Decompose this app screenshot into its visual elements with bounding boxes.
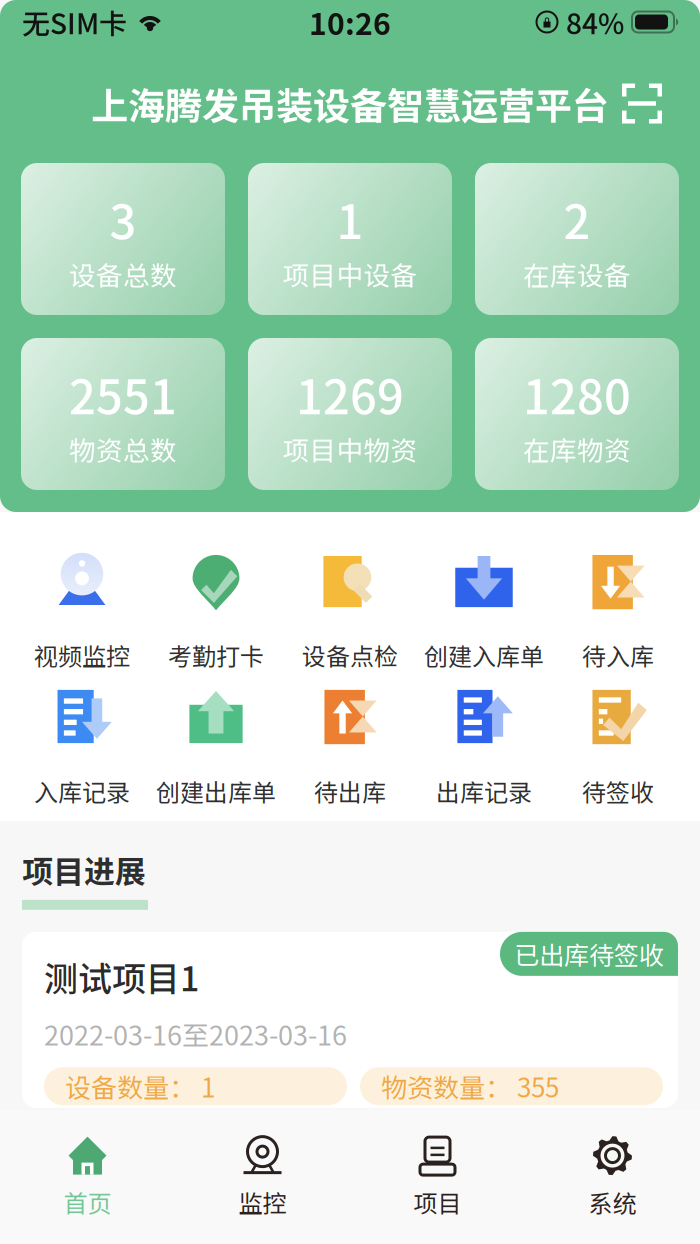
button[interactable]: 系统 [525, 1110, 700, 1244]
staticText: 项目中设备 [282, 255, 417, 293]
staticText: 待出库 [314, 774, 386, 808]
button[interactable]: 1280 [475, 338, 679, 490]
staticText: 1280 [523, 360, 631, 428]
staticText: 测试项目1 [44, 952, 199, 1001]
button[interactable]: 测试项目1 [22, 932, 678, 1108]
staticText: 1 [336, 185, 363, 253]
button[interactable]: 视频监控 [15, 543, 149, 679]
button[interactable]: 1269 [248, 338, 452, 490]
staticText: 创建入库单 [424, 638, 544, 672]
staticText: 监控 [238, 1185, 286, 1219]
staticText: 已出库待签收 [514, 936, 664, 972]
staticText: 84% [566, 2, 624, 42]
staticText: 2551 [69, 360, 177, 428]
button[interactable]: 扫一扫 [612, 73, 672, 133]
button[interactable]: 入库记录 [15, 679, 149, 815]
button[interactable]: 首页 [0, 1110, 175, 1244]
staticText: 设备总数 [69, 255, 177, 293]
staticText: 2022-03-16至2023-03-16 [44, 1014, 347, 1053]
staticText: 上海腾发吊装设备智慧运营平台 [91, 77, 609, 130]
button[interactable]: 2 [475, 163, 679, 315]
button[interactable]: 待签收 [551, 679, 685, 815]
staticText: 设备点检 [302, 638, 398, 672]
staticText: 系统 [588, 1185, 636, 1219]
button[interactable]: 项目 [350, 1110, 525, 1244]
button[interactable]: 创建出库单 [149, 679, 283, 815]
staticText: 创建出库单 [156, 774, 276, 808]
staticText: 待签收 [582, 774, 654, 808]
button[interactable]: 2551 [21, 338, 225, 490]
staticText: 项目中物资 [282, 430, 417, 468]
staticText: 10:26 [309, 0, 391, 44]
staticText: 视频监控 [34, 638, 130, 672]
staticText: 2 [563, 185, 590, 253]
staticText: 无SIM卡 [22, 2, 127, 42]
staticText: 物资总数 [69, 430, 177, 468]
button[interactable]: 待出库 [283, 679, 417, 815]
staticText: 3 [109, 185, 136, 253]
staticText: 入库记录 [34, 774, 130, 808]
button[interactable]: 监控 [175, 1110, 350, 1244]
staticText: 考勤打卡 [168, 638, 264, 672]
staticText: 出库记录 [436, 774, 532, 808]
staticText: 项目 [413, 1185, 461, 1219]
button[interactable]: 出库记录 [417, 679, 551, 815]
button[interactable]: 3 [21, 163, 225, 315]
staticText: 物资数量： 355 [381, 1067, 559, 1105]
staticText: 设备数量： 1 [65, 1067, 215, 1105]
staticText: 在库物资 [523, 430, 631, 468]
button[interactable]: 创建入库单 [417, 543, 551, 679]
staticText: 项目进展 [22, 847, 146, 892]
staticText: 首页 [63, 1185, 111, 1219]
button[interactable]: 待入库 [551, 543, 685, 679]
staticText: 待入库 [582, 638, 654, 672]
staticText: 在库设备 [523, 255, 631, 293]
button[interactable]: 考勤打卡 [149, 543, 283, 679]
button[interactable]: 设备点检 [283, 543, 417, 679]
button[interactable]: 1 [248, 163, 452, 315]
staticText: 1269 [296, 360, 404, 428]
